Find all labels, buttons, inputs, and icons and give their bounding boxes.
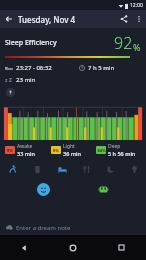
button[interactable]: 8%	[51, 143, 96, 157]
staticText: Light	[63, 143, 75, 150]
staticText: 84%	[97, 148, 106, 153]
staticText: 8%	[7, 148, 13, 153]
button[interactable]: Back	[2, 12, 16, 26]
staticText: Awake	[17, 143, 33, 150]
staticText: 23:27 - 06:32	[16, 64, 52, 72]
button[interactable]: More options	[132, 12, 146, 26]
button[interactable]: Food	[74, 161, 98, 177]
button[interactable]: Enter a dream note	[0, 221, 146, 235]
staticText: 12:00	[130, 2, 143, 9]
staticText: 5 h 56 min	[108, 150, 136, 157]
button[interactable]: Noise recording	[6, 88, 15, 97]
staticText: %	[133, 41, 141, 53]
staticText: z	[5, 77, 8, 83]
staticText: 7 h 5 min	[88, 64, 115, 72]
staticText: 8%	[53, 148, 59, 153]
button[interactable]: Activity	[0, 161, 25, 177]
button[interactable]: Share	[116, 11, 132, 27]
button[interactable]: Sleep tracker device	[97, 183, 110, 196]
button[interactable]: Device	[25, 161, 50, 177]
button[interactable]: 84%	[96, 143, 141, 157]
staticText: Enter a dream note	[16, 224, 71, 232]
staticText: Sleep Efficiency	[5, 38, 57, 48]
button[interactable]: Drink	[98, 161, 122, 177]
staticText: 92	[114, 32, 133, 54]
staticText: Z	[9, 77, 12, 83]
staticText: 23 min	[16, 76, 36, 84]
button[interactable]: Recent apps	[97, 235, 146, 260]
staticText: 33 min	[17, 150, 35, 157]
button[interactable]: Home	[48, 235, 97, 260]
button[interactable]: Mood	[122, 161, 146, 177]
staticText: Tuesday, Nov 4	[18, 14, 76, 25]
button[interactable]: Mood rating	[37, 183, 50, 196]
button[interactable]: Sleep	[50, 161, 74, 177]
staticText: Deep	[108, 143, 121, 150]
button[interactable]: 8%	[5, 143, 51, 157]
staticText: 36 min	[63, 150, 81, 157]
button[interactable]: Back	[0, 235, 48, 260]
